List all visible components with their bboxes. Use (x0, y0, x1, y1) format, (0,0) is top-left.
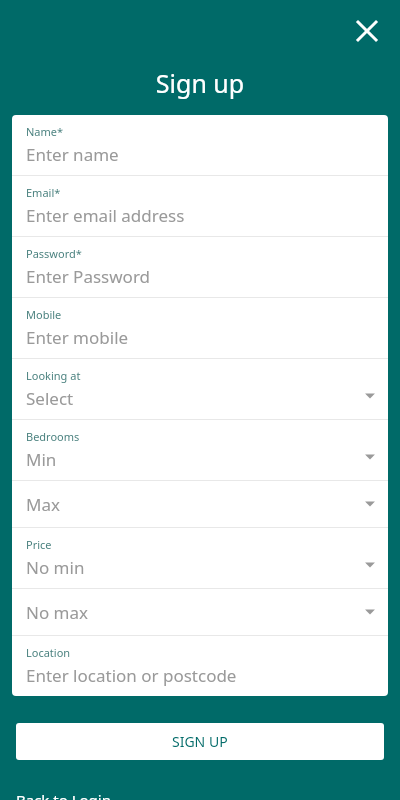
button[interactable]: Mobile (12, 298, 388, 359)
staticText: Looking at (26, 368, 81, 383)
staticText: Back to Login (16, 790, 111, 800)
staticText: Mobile (26, 307, 62, 322)
staticText: Name* (26, 124, 64, 139)
staticText: Enter name (26, 143, 119, 166)
staticText: SIGN UP (172, 732, 228, 751)
button[interactable]: Looking at (12, 359, 388, 420)
staticText: Email* (26, 185, 61, 200)
button[interactable]: Bedrooms (12, 420, 388, 481)
button[interactable]: Close (350, 14, 384, 48)
staticText: Location (26, 645, 71, 660)
button[interactable]: Email* (12, 176, 388, 237)
button[interactable]: No max (12, 589, 388, 636)
button[interactable]: Name* (12, 115, 388, 176)
staticText: Password* (26, 246, 82, 261)
staticText: Enter email address (26, 204, 185, 227)
staticText: Min (26, 448, 57, 471)
staticText: Bedrooms (26, 429, 80, 444)
staticText: Sign up (0, 66, 400, 100)
button[interactable]: Price (12, 528, 388, 589)
staticText: Enter location or postcode (26, 664, 237, 687)
staticText: Enter Password (26, 265, 151, 288)
staticText: No max (26, 601, 89, 624)
button[interactable]: Max (12, 481, 388, 528)
staticText: No min (26, 556, 85, 579)
staticText: Max (26, 493, 60, 516)
button[interactable]: SIGN UP (16, 723, 384, 760)
button[interactable]: Back to Login (16, 790, 111, 800)
button[interactable]: Password* (12, 237, 388, 298)
staticText: Select (26, 387, 74, 410)
staticText: Price (26, 537, 52, 552)
button[interactable]: Location (12, 636, 388, 696)
staticText: Enter mobile (26, 326, 129, 349)
